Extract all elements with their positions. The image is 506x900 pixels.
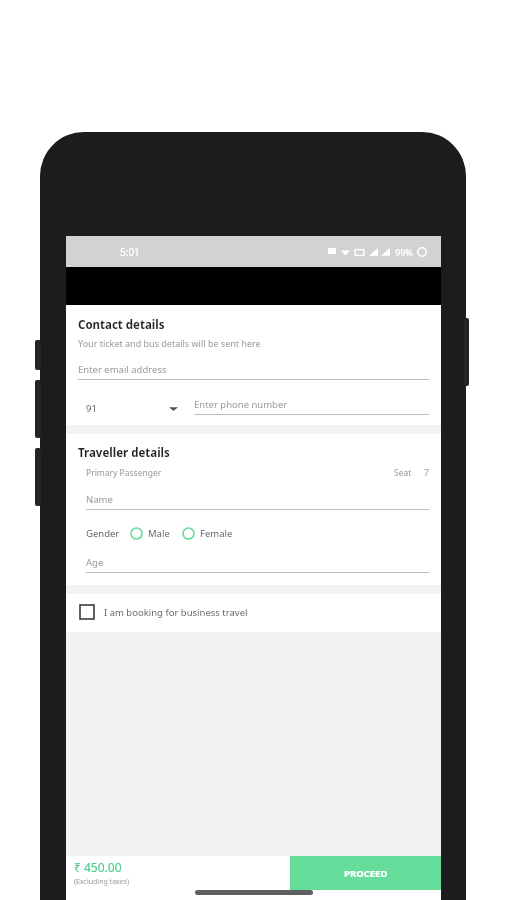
staticText: PROCEED bbox=[344, 867, 388, 880]
button[interactable]: Enter phone number bbox=[194, 398, 429, 415]
staticText: Enter email address bbox=[78, 363, 167, 376]
staticText: Enter phone number bbox=[194, 398, 288, 411]
button[interactable]: Male bbox=[130, 527, 170, 540]
staticText: 5:01 bbox=[120, 245, 140, 259]
staticText: Seat bbox=[394, 467, 412, 479]
button[interactable]: Enter email address bbox=[78, 363, 429, 380]
button[interactable]: 91 bbox=[78, 402, 182, 415]
staticText: (Excluding taxes) bbox=[74, 877, 130, 887]
button[interactable]: Name bbox=[86, 493, 429, 510]
button[interactable]: Age bbox=[86, 556, 429, 573]
button[interactable]: I am booking for business travel bbox=[66, 594, 441, 632]
staticText: Primary Passenger bbox=[86, 467, 162, 479]
staticText: Gender bbox=[86, 527, 120, 540]
staticText: 7 bbox=[424, 467, 429, 479]
staticText: Traveller details bbox=[78, 445, 170, 461]
staticText: Name bbox=[86, 493, 113, 506]
staticText: I am booking for business travel bbox=[104, 606, 248, 619]
staticText: ₹ 450.00 bbox=[74, 859, 122, 875]
button[interactable]: Female bbox=[182, 527, 233, 540]
staticText: Contact details bbox=[78, 317, 165, 333]
staticText: Your ticket and bus details will be sent… bbox=[78, 337, 261, 349]
staticText: Female bbox=[200, 527, 233, 540]
button[interactable]: PROCEED bbox=[290, 856, 441, 890]
staticText: Male bbox=[148, 527, 170, 540]
staticText: Age bbox=[86, 556, 104, 569]
staticText: 91 bbox=[86, 402, 97, 415]
staticText: 99% bbox=[395, 246, 413, 258]
